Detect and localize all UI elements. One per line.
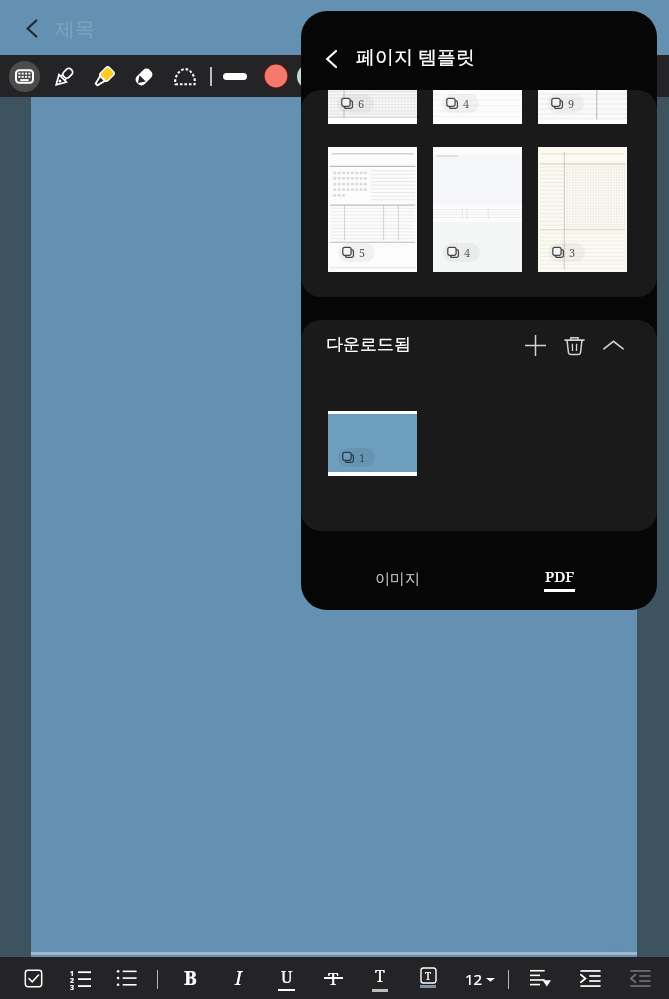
button[interactable]: Add — [516, 326, 554, 364]
button[interactable]: Checklist — [11, 957, 55, 999]
staticText: 1 — [359, 450, 366, 465]
button[interactable]: Numbered list — [58, 957, 102, 999]
staticText: 이미지 — [375, 570, 420, 589]
button[interactable]: Paragraph alignment — [518, 957, 562, 999]
button[interactable]: 4 — [433, 90, 522, 124]
button[interactable]: 4 — [433, 147, 522, 272]
staticText: T — [375, 965, 385, 987]
button[interactable]: 12 — [455, 964, 505, 994]
button[interactable]: Highlighter — [87, 61, 121, 92]
button[interactable]: Text colour — [358, 957, 402, 999]
staticText: 페이지 템플릿 — [356, 44, 475, 70]
button[interactable]: PDF — [519, 559, 599, 599]
staticText: 4 — [463, 96, 470, 111]
button[interactable]: Back — [11, 7, 53, 49]
staticText: 다운로드됨 — [326, 334, 411, 355]
button[interactable]: I — [216, 957, 260, 999]
staticText: I — [235, 965, 242, 991]
staticText: 5 — [359, 245, 366, 260]
staticText: 12 — [465, 969, 483, 989]
button[interactable]: Decrease indent — [618, 957, 662, 999]
button[interactable]: 3 — [538, 147, 627, 272]
button[interactable]: Pen — [47, 61, 81, 92]
button[interactable]: Collapse — [594, 326, 632, 364]
button[interactable]: Increase indent — [568, 957, 612, 999]
staticText: 9 — [568, 96, 575, 111]
button[interactable]: Underline — [264, 957, 308, 999]
button[interactable]: Stroke width — [215, 61, 255, 92]
staticText: 6 — [358, 96, 365, 111]
staticText: 제목 — [55, 17, 95, 42]
staticText: 3 — [70, 983, 75, 993]
button[interactable]: Bulleted list — [104, 957, 148, 999]
staticText: T — [425, 969, 432, 983]
staticText: 4 — [464, 245, 471, 260]
staticText: 1 — [70, 969, 75, 979]
staticText: 1/1 — [607, 941, 621, 953]
button[interactable]: 5 — [328, 147, 417, 272]
button[interactable]: Red colour — [261, 61, 291, 91]
button[interactable]: Delete — [555, 326, 593, 364]
staticText: 3 — [569, 245, 576, 260]
button[interactable]: Lasso select — [168, 61, 202, 92]
staticText: U — [281, 966, 293, 988]
button[interactable]: Green colour — [294, 61, 324, 91]
staticText: T — [328, 967, 339, 988]
button[interactable]: 이미지 — [357, 559, 437, 599]
button[interactable]: Keyboard — [9, 61, 40, 92]
button[interactable]: Back — [311, 38, 353, 80]
staticText: PDF — [545, 566, 575, 586]
button[interactable]: Strikethrough — [311, 957, 355, 999]
button[interactable]: B — [168, 957, 212, 999]
button[interactable]: Text highlight — [406, 957, 450, 999]
staticText: 2 — [70, 976, 75, 986]
button[interactable]: 6 — [328, 90, 417, 124]
button[interactable]: 9 — [538, 90, 627, 124]
staticText: B — [184, 965, 197, 991]
button[interactable]: Eraser — [127, 61, 161, 92]
button[interactable]: 1 — [328, 411, 417, 476]
